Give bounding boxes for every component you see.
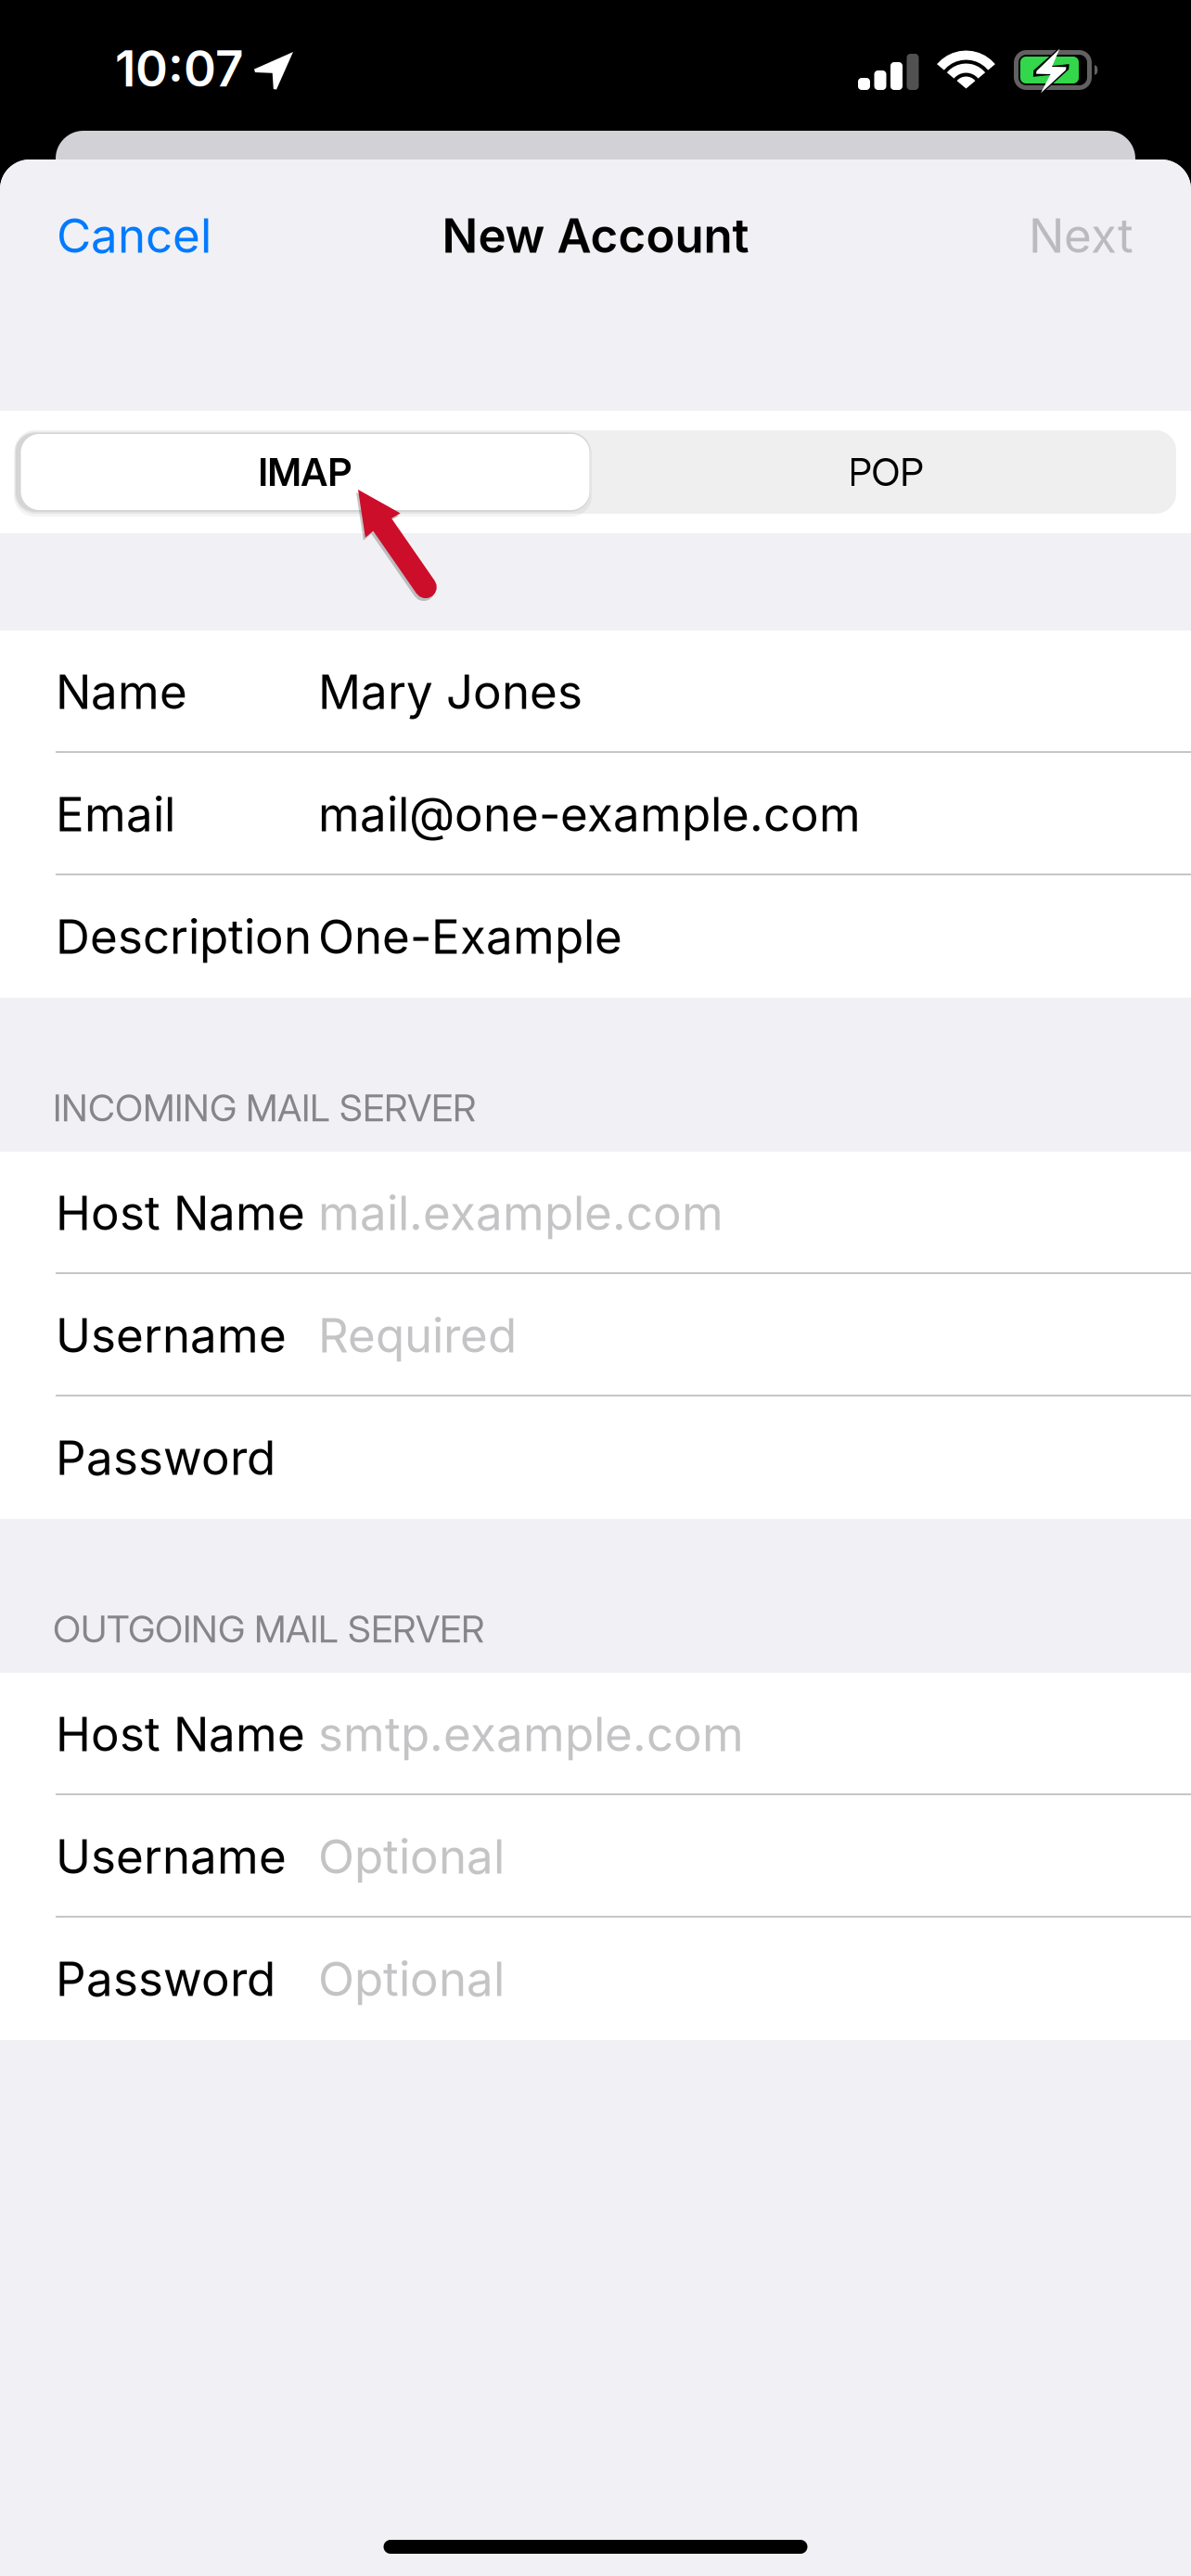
staticText: Name <box>56 663 187 720</box>
staticText: Username <box>56 1307 287 1364</box>
staticText: New Account <box>442 207 749 264</box>
button[interactable]: IMAP <box>15 430 595 514</box>
button[interactable]: Email <box>0 753 1191 875</box>
staticText: IMAP <box>258 449 352 495</box>
staticText: Optional <box>318 1828 505 1885</box>
button[interactable]: Host Name <box>0 1673 1191 1795</box>
staticText: Host Name <box>56 1705 305 1763</box>
staticText: Username <box>56 1828 287 1885</box>
staticText: Password <box>56 1429 275 1486</box>
staticText: Password <box>56 1950 275 2007</box>
button[interactable]: Name <box>0 631 1191 753</box>
button[interactable]: Username <box>0 1795 1191 1918</box>
staticText: INCOMING MAIL SERVER <box>53 1085 476 1130</box>
button[interactable]: Cancel <box>0 184 315 287</box>
button[interactable]: Password <box>0 1396 1191 1519</box>
staticText: Required <box>318 1307 517 1364</box>
staticText: mail.example.com <box>318 1184 724 1241</box>
staticText: 10:07 <box>115 39 244 98</box>
staticText: Host Name <box>56 1184 305 1241</box>
staticText: OUTGOING MAIL SERVER <box>53 1607 484 1651</box>
staticText: Mary Jones <box>318 663 583 720</box>
staticText: Cancel <box>57 207 211 264</box>
staticText: Email <box>56 786 175 843</box>
button[interactable]: Host Name <box>0 1152 1191 1274</box>
button[interactable]: Next <box>876 184 1191 287</box>
staticText: Next <box>1029 207 1133 264</box>
staticText: mail@one-example.com <box>318 786 861 843</box>
button[interactable]: Username <box>0 1274 1191 1396</box>
staticText: One-Example <box>318 908 622 965</box>
button[interactable]: Password <box>0 1918 1191 2040</box>
button[interactable]: Description <box>0 875 1191 998</box>
staticText: Optional <box>318 1950 505 2007</box>
staticText: Description <box>56 908 312 965</box>
staticText: smtp.example.com <box>318 1705 744 1763</box>
staticText: POP <box>848 449 923 495</box>
button[interactable]: POP <box>595 430 1176 514</box>
